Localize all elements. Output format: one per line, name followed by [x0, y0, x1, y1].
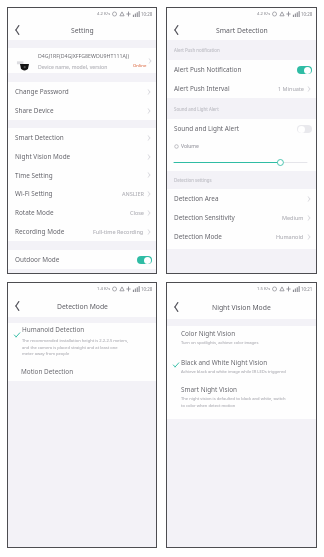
button[interactable]: Smart Night Vision: [167, 382, 316, 415]
staticText: 4.2 K/s: [257, 11, 271, 17]
staticText: Device name, model, version: [38, 63, 108, 70]
button[interactable]: Back: [167, 20, 184, 40]
button[interactable]: Share Device: [8, 101, 156, 120]
button[interactable]: Toggle: [297, 125, 312, 133]
staticText: Smart Detection: [216, 26, 268, 35]
staticText: Achieve black and white image while IR L…: [181, 369, 286, 375]
staticText: Setting: [71, 26, 94, 35]
staticText: Humanoid: [276, 233, 304, 240]
staticText: Black and White Night Vision: [181, 358, 268, 367]
staticText: Alert Push Interval: [174, 84, 230, 93]
staticText: Detection Mode: [57, 302, 108, 311]
button[interactable]: Smart Detection: [8, 128, 156, 147]
staticText: Night Vision Mode: [212, 303, 271, 312]
button[interactable]: Back: [167, 295, 184, 319]
staticText: Full-time Recording: [93, 228, 144, 235]
staticText: 1.4 K/s: [97, 286, 111, 292]
staticText: Volume: [181, 143, 199, 150]
button[interactable]: Detection Mode: [167, 227, 316, 246]
button[interactable]: Detection Area: [167, 189, 316, 208]
staticText: The recommended installation height is 2…: [22, 338, 128, 356]
staticText: Detection Area: [174, 194, 219, 203]
button[interactable]: Rotate Mode: [8, 203, 156, 222]
staticText: Sound and Light Alert: [174, 106, 219, 112]
button[interactable]: Black and White Night Vision: [167, 355, 316, 382]
button[interactable]: Change Password: [8, 82, 156, 101]
staticText: Night Vision Mode: [15, 152, 71, 161]
staticText: 10:21: [301, 286, 313, 292]
button[interactable]: Toggle: [137, 256, 152, 264]
staticText: 1 Minuate: [278, 85, 304, 92]
button[interactable]: Color Night Vision: [167, 326, 316, 355]
staticText: The night vision is defaulted to black a…: [181, 396, 286, 408]
staticText: Sound and Light Alert: [174, 124, 240, 133]
button[interactable]: Back: [8, 295, 25, 317]
button[interactable]: Toggle: [297, 66, 312, 74]
staticText: Online: [133, 62, 147, 68]
staticText: Detection settings: [174, 177, 212, 183]
button[interactable]: D4GJ1RF(D4GJXFFG8EWDU9HT111AJ): [8, 48, 156, 73]
button[interactable]: Motion Detection: [8, 363, 156, 379]
staticText: Medium: [282, 214, 304, 221]
staticText: Motion Detection: [21, 367, 74, 376]
button[interactable]: Alert Push Interval: [167, 79, 316, 98]
button[interactable]: Outdoor Mode: [8, 250, 156, 269]
button[interactable]: Wi-Fi Setting: [8, 184, 156, 203]
staticText: Outdoor Mode: [15, 255, 60, 264]
staticText: Turn on spotlights, achieve color images: [181, 340, 259, 346]
button[interactable]: Sound and Light Alert: [167, 119, 316, 138]
staticText: Humanoid Detection: [22, 325, 85, 334]
staticText: D4GJ1RF(D4GJXFFG8EWDU9HT111AJ): [38, 52, 130, 59]
staticText: Time Setting: [15, 171, 53, 180]
staticText: Color Night Vision: [181, 329, 236, 338]
staticText: ANSLIER: [122, 190, 144, 197]
staticText: Detection Sensitivity: [174, 213, 235, 222]
button[interactable]: Alert Push Notification: [167, 60, 316, 79]
staticText: Share Device: [15, 106, 54, 115]
staticText: Recording Mode: [15, 227, 65, 236]
button[interactable]: Recording Mode: [8, 222, 156, 241]
staticText: Rotate Mode: [15, 208, 54, 217]
staticText: Detection Mode: [174, 232, 222, 241]
staticText: Change Password: [15, 87, 69, 96]
staticText: Alert Push Notification: [174, 65, 242, 74]
button[interactable]: Time Setting: [8, 166, 156, 184]
staticText: Smart Detection: [15, 133, 64, 142]
button[interactable]: Back: [8, 20, 25, 40]
button[interactable]: Night Vision Mode: [8, 147, 156, 166]
staticText: Smart Night Vision: [181, 385, 238, 394]
staticText: 1.5 K/s: [257, 286, 271, 292]
staticText: Alert Push notification: [174, 47, 220, 53]
staticText: 4.2 K/s: [97, 11, 111, 17]
staticText: 10:28: [141, 11, 153, 17]
button[interactable]: Detection Sensitivity: [167, 208, 316, 227]
button[interactable]: Humanoid Detection: [8, 323, 156, 363]
staticText: Close: [130, 209, 144, 216]
staticText: Wi-Fi Setting: [15, 189, 53, 198]
staticText: 10:28: [141, 286, 153, 292]
staticText: 10:28: [301, 11, 313, 17]
